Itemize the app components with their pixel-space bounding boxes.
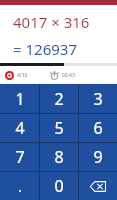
staticText: = 126937 bbox=[13, 39, 77, 59]
button[interactable]: . bbox=[0, 172, 39, 200]
staticText: 1 bbox=[15, 88, 25, 110]
staticText: 4 bbox=[15, 117, 25, 139]
button[interactable]: 2 bbox=[40, 84, 78, 113]
staticText: 0 bbox=[54, 175, 64, 197]
staticText: 7 bbox=[15, 146, 25, 168]
other: Timer bbox=[50, 71, 59, 80]
button[interactable]: 1 bbox=[0, 84, 39, 113]
staticText: 4/10 bbox=[17, 72, 28, 79]
staticText: 6 bbox=[93, 117, 103, 139]
staticText: 3 bbox=[93, 88, 103, 110]
button[interactable]: 7 bbox=[0, 143, 39, 171]
staticText: 2 bbox=[54, 88, 64, 110]
button[interactable]: 5 bbox=[40, 114, 78, 142]
button[interactable]: 0 bbox=[40, 172, 78, 200]
button[interactable]: 3 bbox=[79, 84, 117, 113]
staticText: 02:43 bbox=[62, 72, 75, 79]
button[interactable]: 4 bbox=[0, 114, 39, 142]
staticText: 4017 × 316 bbox=[13, 12, 90, 32]
staticText: 9 bbox=[93, 146, 103, 168]
button[interactable]: 6 bbox=[79, 114, 117, 142]
staticText: 5 bbox=[54, 117, 64, 139]
button[interactable]: 9 bbox=[79, 143, 117, 171]
button[interactable]: 8 bbox=[40, 143, 78, 171]
button[interactable]: Backspace bbox=[79, 172, 117, 200]
staticText: . bbox=[18, 177, 22, 196]
staticText: 8 bbox=[54, 146, 64, 168]
